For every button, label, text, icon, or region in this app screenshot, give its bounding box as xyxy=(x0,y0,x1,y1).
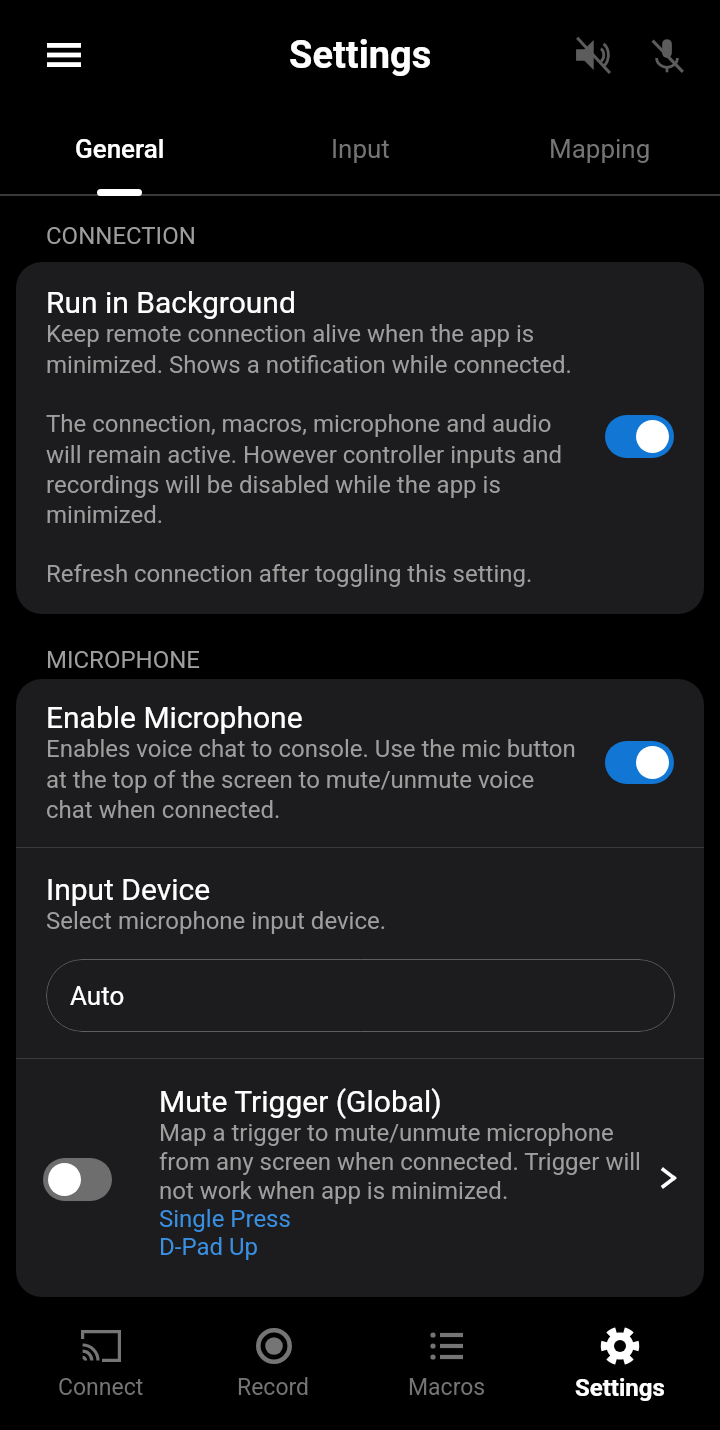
button[interactable]: Connect xyxy=(14,1297,187,1430)
button[interactable]: Toggle on xyxy=(605,415,674,458)
button[interactable]: Run in Background xyxy=(16,262,704,614)
staticText: Single Press xyxy=(159,1205,291,1233)
staticText: Refresh connection after toggling this s… xyxy=(46,560,533,588)
other: Open mute trigger mapping xyxy=(646,1156,690,1200)
staticText: Mapping xyxy=(549,134,651,164)
staticText: Mute Trigger (Global) xyxy=(159,1084,442,1119)
staticText: D-Pad Up xyxy=(159,1233,258,1261)
staticText: Input xyxy=(331,134,390,164)
staticText: Run in Background xyxy=(46,285,296,320)
staticText: Macros xyxy=(408,1374,486,1401)
button[interactable]: Input xyxy=(240,110,480,196)
button[interactable]: Toggle on xyxy=(605,741,674,784)
staticText: Enable Microphone xyxy=(46,700,303,735)
staticText: Input Device xyxy=(46,872,211,907)
staticText: Auto xyxy=(70,981,125,1011)
staticText: Select microphone input device. xyxy=(46,907,387,935)
button[interactable]: Input Device xyxy=(16,848,704,1058)
button[interactable]: Record xyxy=(187,1297,360,1430)
button[interactable]: Enable Microphone xyxy=(16,679,704,847)
staticText: Map a trigger to mute/unmute microphone … xyxy=(159,1119,659,1205)
staticText: Settings xyxy=(289,33,432,78)
button[interactable]: General xyxy=(0,110,240,196)
button[interactable]: Settings xyxy=(533,1297,706,1430)
button[interactable]: Mute audio xyxy=(557,19,629,90)
button[interactable]: Toggle off xyxy=(43,1158,112,1201)
staticText: Keep remote connection alive when the ap… xyxy=(46,320,586,379)
button[interactable]: Auto xyxy=(46,959,675,1032)
button[interactable]: Mute microphone xyxy=(631,19,703,90)
button[interactable]: Macros xyxy=(360,1297,533,1430)
staticText: CONNECTION xyxy=(46,222,196,250)
staticText: Settings xyxy=(575,1374,665,1402)
staticText: Record xyxy=(237,1374,310,1401)
staticText: Connect xyxy=(58,1374,144,1401)
staticText: General xyxy=(75,134,165,164)
button[interactable]: Mapping xyxy=(480,110,720,196)
staticText: MICROPHONE xyxy=(46,646,200,674)
button[interactable]: Menu xyxy=(28,20,100,90)
button[interactable]: Mute Trigger (Global) xyxy=(16,1059,704,1297)
staticText: Enables voice chat to console. Use the m… xyxy=(46,735,586,824)
staticText: The connection, macros, microphone and a… xyxy=(46,410,586,529)
